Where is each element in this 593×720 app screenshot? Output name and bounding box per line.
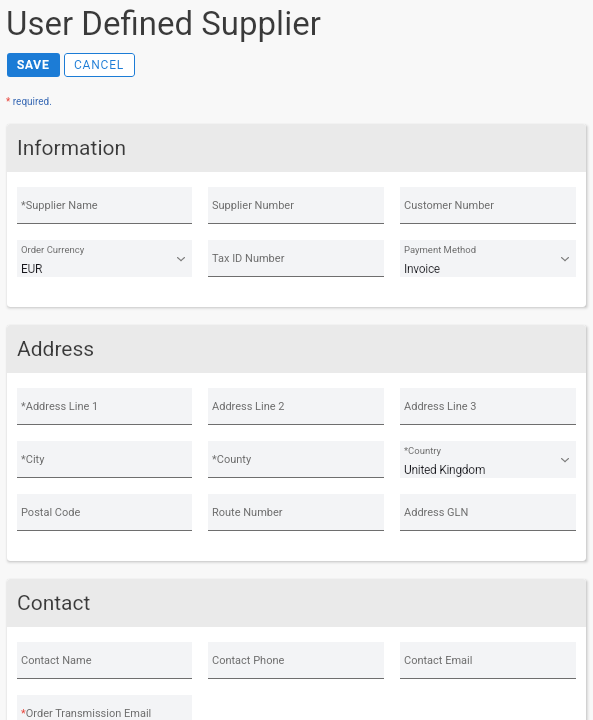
staticText: *City bbox=[21, 453, 45, 466]
button[interactable]: Contact Name bbox=[17, 642, 192, 679]
staticText: Contact Name bbox=[21, 654, 92, 667]
staticText: Tax ID Number bbox=[212, 252, 285, 265]
staticText: EUR bbox=[21, 262, 43, 276]
button[interactable]: Contact Phone bbox=[208, 642, 384, 679]
button[interactable]: Supplier Number bbox=[208, 187, 384, 224]
staticText: SAVE bbox=[17, 58, 50, 72]
other: Open Country dropdown bbox=[561, 456, 569, 464]
button[interactable]: Tax ID Number bbox=[208, 240, 384, 277]
staticText: *Order Transmission Email bbox=[21, 707, 152, 720]
button[interactable]: Order Currency bbox=[17, 240, 192, 277]
staticText: Address Line 3 bbox=[404, 400, 477, 413]
staticText: User Defined Supplier bbox=[6, 4, 321, 43]
staticText: Address Line 2 bbox=[212, 400, 285, 413]
staticText: Order Currency bbox=[21, 244, 85, 255]
staticText: Customer Number bbox=[404, 199, 494, 212]
button[interactable]: Address Line 2 bbox=[208, 388, 384, 425]
button[interactable]: CANCEL bbox=[64, 53, 135, 77]
staticText: Route Number bbox=[212, 506, 283, 519]
staticText: Postal Code bbox=[21, 506, 81, 519]
button[interactable]: SAVE bbox=[7, 53, 60, 77]
button[interactable]: Postal Code bbox=[17, 494, 192, 531]
staticText: Contact Phone bbox=[212, 654, 285, 667]
staticText: Contact Email bbox=[404, 654, 473, 667]
button[interactable]: *Order Transmission Email bbox=[17, 695, 192, 720]
staticText: *Supplier Name bbox=[21, 199, 98, 212]
button[interactable]: *City bbox=[17, 441, 192, 478]
staticText: United Kingdom bbox=[404, 463, 486, 477]
button[interactable]: Customer Number bbox=[400, 187, 576, 224]
staticText: *Address Line 1 bbox=[21, 400, 99, 413]
other: Open Order Currency dropdown bbox=[177, 255, 185, 263]
staticText: Supplier Number bbox=[212, 199, 294, 212]
staticText: CANCEL bbox=[74, 58, 125, 72]
button[interactable]: *Supplier Name bbox=[17, 187, 192, 224]
button[interactable]: *Address Line 1 bbox=[17, 388, 192, 425]
staticText: Address GLN bbox=[404, 506, 469, 519]
other: Open Payment Method dropdown bbox=[561, 255, 569, 263]
staticText: Information bbox=[17, 136, 127, 161]
button[interactable]: *County bbox=[208, 441, 384, 478]
button[interactable]: Payment Method bbox=[400, 240, 576, 277]
staticText: Payment Method bbox=[404, 244, 477, 255]
button[interactable]: *Country bbox=[400, 441, 576, 478]
button[interactable]: Address Line 3 bbox=[400, 388, 576, 425]
staticText: *Country bbox=[404, 445, 442, 456]
staticText: Address bbox=[17, 337, 95, 362]
button[interactable]: Route Number bbox=[208, 494, 384, 531]
staticText: * required. bbox=[6, 96, 52, 108]
staticText: Contact bbox=[17, 591, 91, 616]
staticText: *County bbox=[212, 453, 252, 466]
staticText: Invoice bbox=[404, 262, 440, 276]
button[interactable]: Address GLN bbox=[400, 494, 576, 531]
button[interactable]: Contact Email bbox=[400, 642, 576, 679]
